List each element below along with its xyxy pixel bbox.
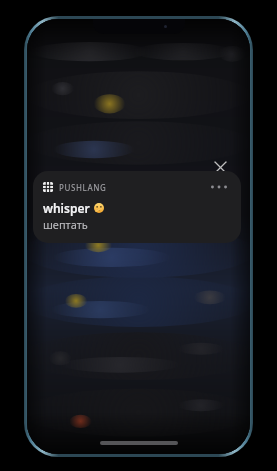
staticText: whisper: [43, 200, 90, 216]
button[interactable]: PUSHLANG: [33, 171, 241, 243]
button[interactable]: Close: [205, 152, 235, 182]
button[interactable]: More options: [207, 179, 231, 195]
staticText: шептать: [43, 217, 88, 232]
staticText: PUSHLANG: [59, 182, 107, 193]
